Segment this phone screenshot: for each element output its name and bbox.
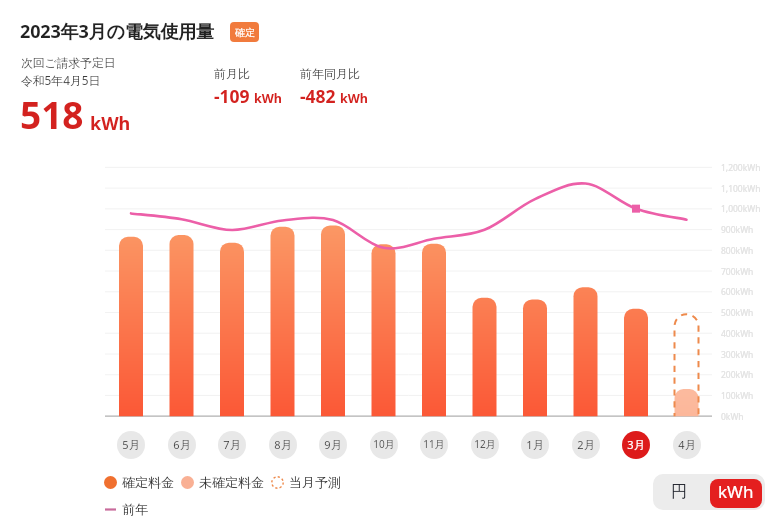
staticText: 6月 xyxy=(173,437,191,452)
button[interactable]: 6月 xyxy=(168,431,196,459)
button[interactable]: 12月 xyxy=(471,431,499,459)
button[interactable]: 確定料金 xyxy=(104,474,341,490)
staticText: 確定 xyxy=(235,26,255,39)
staticText: 確定料金 xyxy=(122,474,174,490)
staticText: 518 xyxy=(20,89,84,139)
staticText: 1月 xyxy=(526,437,544,452)
staticText: 5月 xyxy=(122,437,140,452)
staticText: 円 xyxy=(671,482,687,502)
staticText: 7月 xyxy=(223,437,241,452)
button[interactable]: 2月 xyxy=(572,431,600,459)
staticText: 2023年3月の電気使用量 xyxy=(20,19,214,44)
staticText: 1,000kWh xyxy=(721,203,761,215)
staticText: 1,100kWh xyxy=(721,183,761,195)
button[interactable]: kWh xyxy=(710,479,762,508)
staticText: 200kWh xyxy=(721,369,754,381)
staticText: -109 xyxy=(214,84,250,108)
staticText: 0kWh xyxy=(721,411,744,423)
button[interactable]: 5月 xyxy=(117,431,145,459)
staticText: 4月 xyxy=(678,437,696,452)
staticText: 9月 xyxy=(324,437,342,452)
button[interactable]: 10月 xyxy=(370,431,398,459)
staticText: 当月予測 xyxy=(289,474,341,490)
staticText: kWh xyxy=(340,90,368,107)
staticText: 1,200kWh xyxy=(721,162,761,174)
staticText: kWh xyxy=(254,90,282,107)
staticText: -482 xyxy=(300,84,336,108)
button[interactable]: 9月 xyxy=(319,431,347,459)
button[interactable]: 7月 xyxy=(218,431,246,459)
staticText: 12月 xyxy=(474,437,496,451)
button[interactable]: 1月 xyxy=(521,431,549,459)
button[interactable]: 3月 xyxy=(622,431,650,459)
button[interactable]: 4月 xyxy=(673,431,701,459)
button[interactable]: 確定 xyxy=(230,22,259,42)
staticText: 令和5年4月5日 xyxy=(21,72,101,88)
staticText: kWh xyxy=(718,480,754,503)
staticText: 前年同月比 xyxy=(300,66,360,81)
staticText: 400kWh xyxy=(721,328,754,340)
staticText: 800kWh xyxy=(721,245,754,257)
staticText: 11月 xyxy=(423,437,445,451)
button[interactable]: 8月 xyxy=(269,431,297,459)
staticText: 次回ご請求予定日 xyxy=(21,56,116,71)
staticText: kWh xyxy=(90,111,131,136)
staticText: 前月比 xyxy=(214,66,250,81)
staticText: 600kWh xyxy=(721,286,754,298)
staticText: 100kWh xyxy=(721,390,754,402)
staticText: 2月 xyxy=(577,437,595,452)
staticText: 900kWh xyxy=(721,224,754,236)
button[interactable]: 前年 xyxy=(104,501,148,517)
staticText: 前年 xyxy=(122,501,148,517)
staticText: 3月 xyxy=(627,437,645,452)
staticText: 300kWh xyxy=(721,349,754,361)
button[interactable]: 11月 xyxy=(420,431,448,459)
button[interactable]: 円 xyxy=(653,474,705,509)
staticText: 10月 xyxy=(373,437,395,451)
staticText: 8月 xyxy=(274,437,292,452)
staticText: 未確定料金 xyxy=(199,474,264,490)
staticText: 500kWh xyxy=(721,307,754,319)
staticText: 700kWh xyxy=(721,266,754,278)
